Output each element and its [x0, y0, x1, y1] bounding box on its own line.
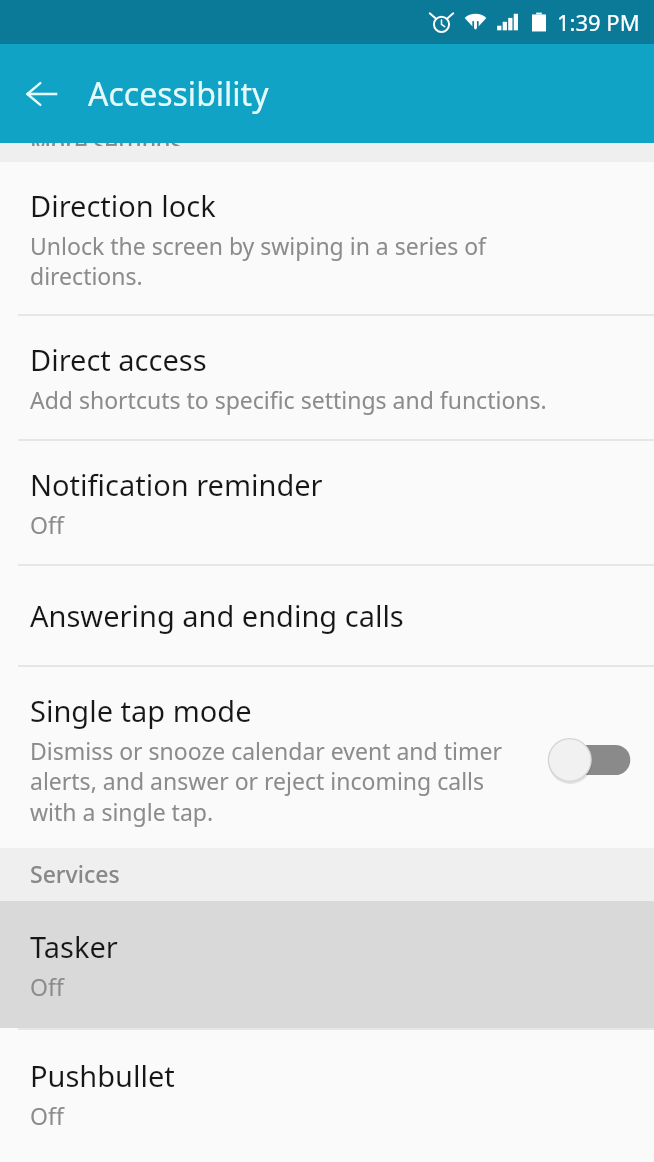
button[interactable]: Notification reminder [0, 441, 654, 564]
button[interactable]: Answering and ending calls [0, 566, 654, 665]
staticText: Unlock the screen by swiping in a series… [30, 230, 486, 292]
staticText: Tasker [30, 927, 118, 966]
button[interactable]: Single tap mode [0, 667, 654, 848]
button[interactable]: Direct access [0, 316, 654, 439]
button[interactable]: Pushbullet [0, 1030, 654, 1157]
button[interactable]: Direction lock [0, 162, 654, 314]
staticText: More settings [30, 143, 182, 146]
staticText: Pushbullet [30, 1056, 175, 1095]
staticText: Direct access [30, 340, 207, 379]
staticText: Off [30, 1100, 64, 1131]
staticText: Services [30, 858, 120, 889]
staticText: Notification reminder [30, 465, 323, 504]
button[interactable]: Single tap mode, off [546, 733, 632, 787]
button[interactable]: Navigate up [12, 64, 72, 124]
staticText: Answering and ending calls [30, 596, 404, 635]
staticText: Accessibility [88, 72, 269, 116]
staticText: Single tap mode [30, 691, 252, 730]
staticText: Dismiss or snooze calendar event and tim… [30, 735, 502, 828]
staticText: Add shortcuts to specific settings and f… [30, 384, 547, 415]
staticText: Off [30, 971, 64, 1002]
staticText: Off [30, 509, 64, 540]
button[interactable]: Tasker [0, 901, 654, 1028]
staticText: Direction lock [30, 186, 216, 225]
staticText: 1:39 PM [557, 7, 640, 37]
